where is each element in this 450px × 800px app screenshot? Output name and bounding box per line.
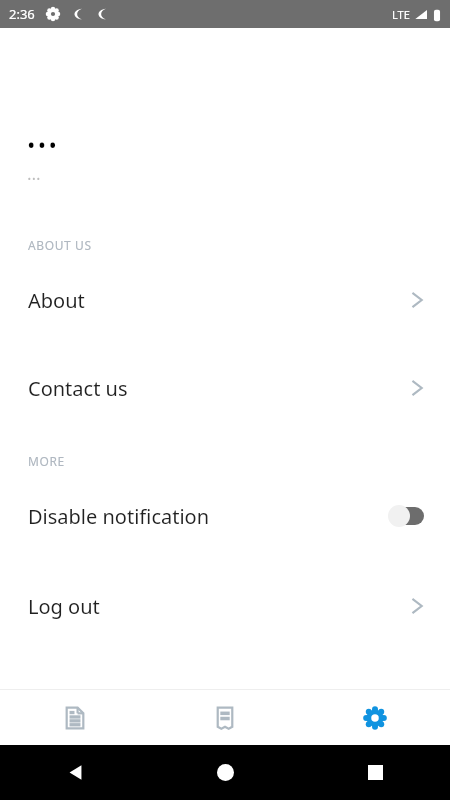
- staticText: Log out: [28, 593, 411, 620]
- staticText: • • •: [28, 175, 40, 185]
- button[interactable]: Disable notification: [0, 499, 450, 533]
- button[interactable]: Back: [0, 745, 150, 800]
- staticText: Disable notification: [28, 503, 388, 530]
- staticText: MORE: [28, 453, 65, 469]
- staticText: 2:36: [9, 5, 35, 23]
- button[interactable]: Log out: [0, 589, 450, 623]
- button[interactable]: Documents: [0, 690, 150, 745]
- button[interactable]: About: [0, 283, 450, 317]
- button[interactable]: Settings: [300, 690, 450, 745]
- staticText: Contact us: [28, 375, 411, 402]
- button[interactable]: Recent apps: [300, 745, 450, 800]
- staticText: About: [28, 287, 411, 314]
- staticText: LTE: [392, 7, 410, 22]
- button[interactable]: Contact us: [0, 371, 450, 405]
- button[interactable]: Home: [150, 745, 300, 800]
- staticText: • • •: [28, 134, 57, 157]
- staticText: ABOUT US: [28, 237, 92, 253]
- button[interactable]: Receipts: [150, 690, 300, 745]
